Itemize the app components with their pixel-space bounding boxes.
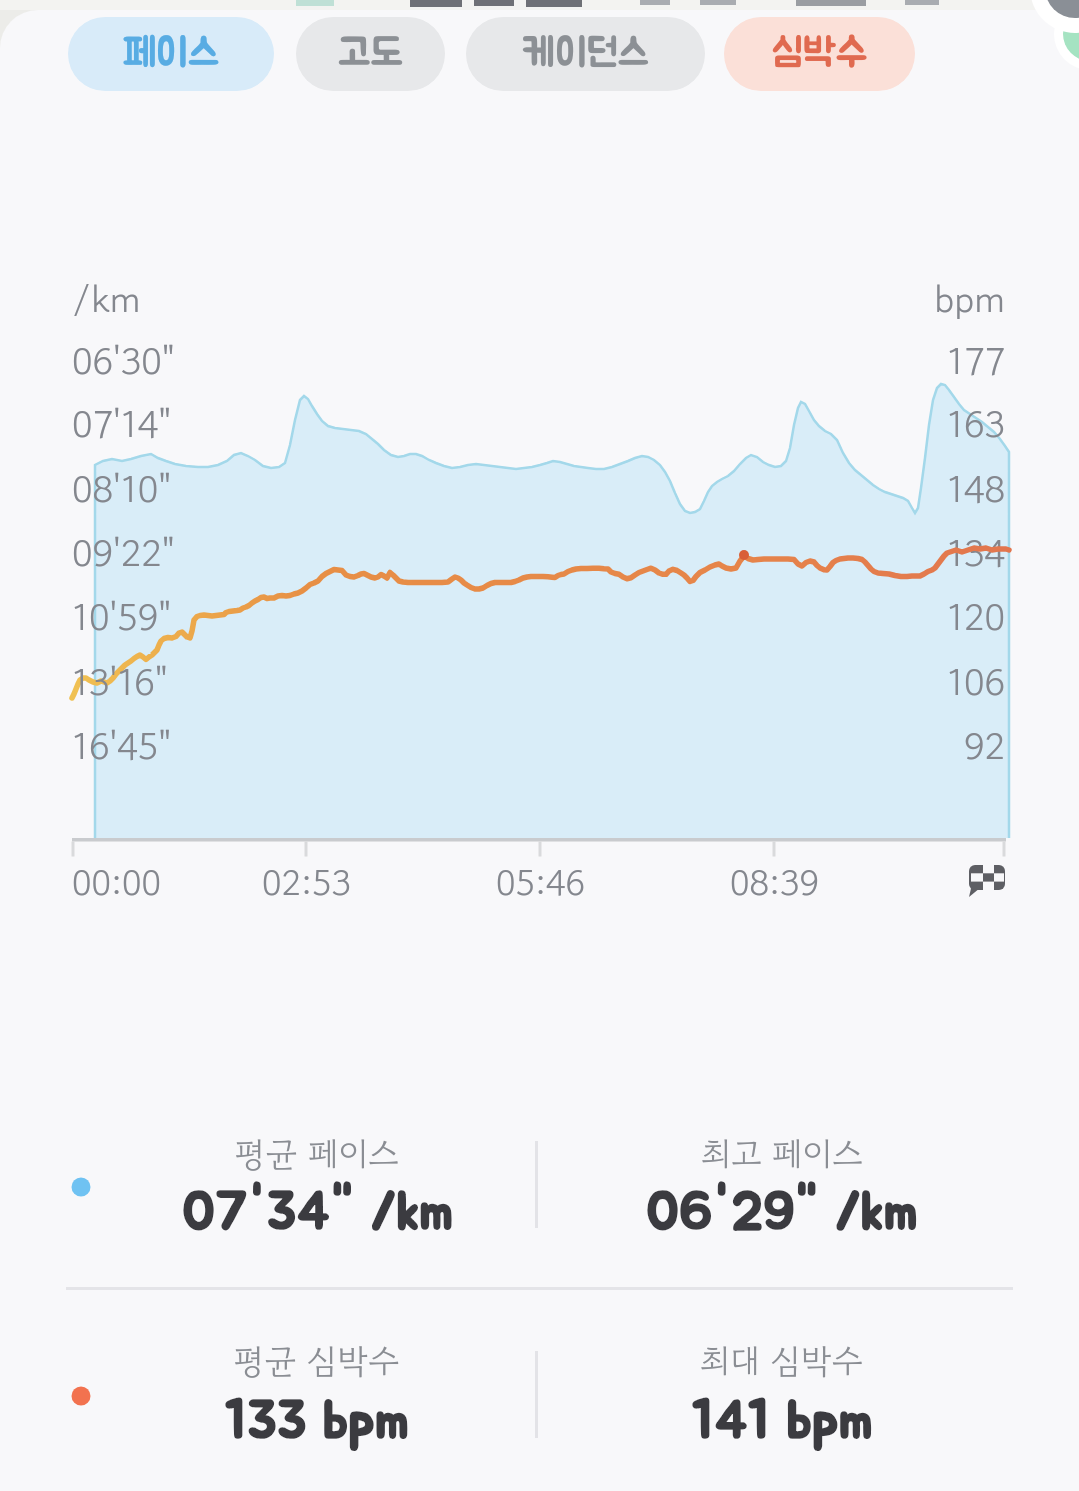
staticText: 141 bpm: [692, 1395, 873, 1449]
staticText: 평균 페이스: [235, 1129, 399, 1178]
button[interactable]: 심박수: [724, 17, 915, 91]
staticText: 고도: [338, 34, 403, 74]
staticText: 최고 페이스: [701, 1129, 863, 1178]
staticText: 평균 심박수: [234, 1336, 400, 1385]
staticText: 케이던스: [522, 34, 649, 74]
staticText: 134: [947, 525, 1006, 580]
staticText: 08'10": [72, 461, 172, 516]
staticText: 13'16": [72, 654, 168, 709]
staticText: 163: [947, 396, 1006, 451]
staticText: 06'29" /km: [646, 1186, 918, 1240]
staticText: 페이스: [123, 34, 220, 74]
staticText: 177: [947, 333, 1006, 388]
staticText: 00:00: [72, 856, 161, 908]
button[interactable]: 페이스: [68, 17, 274, 91]
button[interactable]: 고도: [296, 17, 445, 91]
staticText: 07'34" /km: [182, 1186, 453, 1240]
staticText: 148: [947, 461, 1006, 516]
staticText: 120: [947, 589, 1006, 644]
staticText: 133 bpm: [225, 1395, 409, 1449]
staticText: 06'30": [72, 333, 175, 388]
staticText: bpm: [934, 271, 1006, 326]
staticText: 심박수: [772, 34, 868, 74]
staticText: 10'59": [72, 589, 172, 644]
staticText: /km: [72, 271, 141, 326]
staticText: 07'14": [72, 396, 172, 451]
staticText: 05:46: [496, 856, 585, 908]
button[interactable]: 케이던스: [466, 17, 705, 91]
staticText: 최대 심박수: [700, 1336, 864, 1385]
staticText: 08:39: [730, 856, 819, 908]
staticText: 16'45": [72, 718, 172, 773]
staticText: 92: [964, 718, 1006, 773]
staticText: 02:53: [262, 856, 351, 908]
staticText: 09'22": [72, 525, 175, 580]
staticText: 106: [947, 654, 1006, 709]
